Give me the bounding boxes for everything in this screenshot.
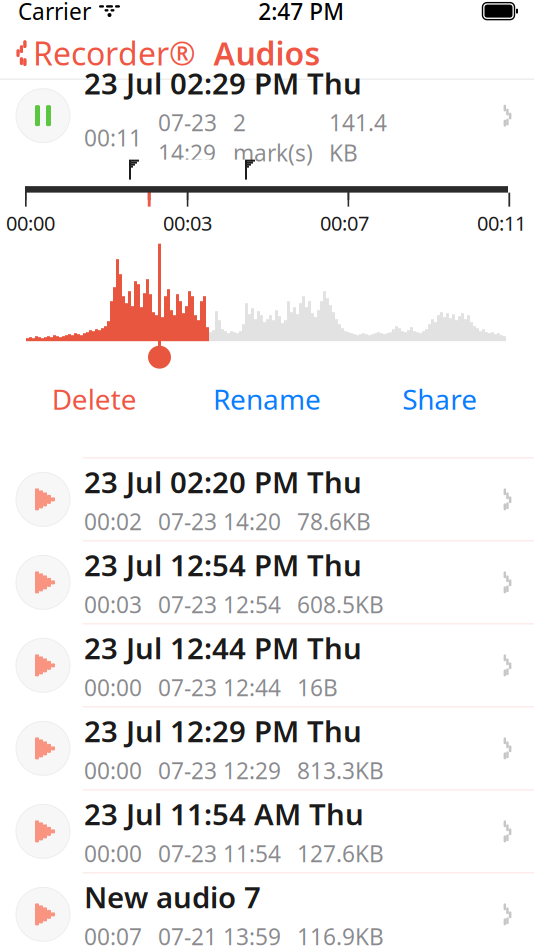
button[interactable]: Rename	[181, 370, 353, 427]
button[interactable]: Recorder®	[0, 24, 196, 82]
staticText: Delete	[52, 380, 137, 417]
staticText: 23 Jul 12:29 PM Thu	[84, 711, 362, 750]
staticText: 23 Jul 02:29 PM Thu	[84, 64, 362, 103]
staticText: 127.6KB	[297, 838, 384, 868]
staticText: 07-23 12:44	[158, 672, 281, 702]
staticText: 07-23 14:29	[158, 107, 217, 168]
staticText: 07-23 12:29	[158, 755, 281, 785]
staticText: 00:00	[84, 755, 142, 785]
staticText: New audio 7	[84, 877, 261, 916]
staticText: 116.9KB	[297, 921, 384, 950]
staticText: 00:02	[84, 506, 142, 536]
staticText: 07-23 12:54	[158, 589, 281, 619]
staticText: 23 Jul 12:44 PM Thu	[84, 628, 362, 667]
button[interactable]: 23 Jul 11:54 AM Thu	[0, 790, 534, 872]
staticText: Share	[402, 380, 477, 417]
staticText: 2:47 PM	[258, 0, 344, 26]
staticText: 2 mark(s)	[233, 107, 313, 168]
staticText: 78.6KB	[297, 506, 371, 536]
staticText: Rename	[213, 380, 321, 417]
staticText: 00:03	[84, 589, 142, 619]
staticText: 23 Jul 02:20 PM Thu	[84, 462, 362, 501]
staticText: Audios	[213, 32, 320, 74]
staticText: Recorder®	[33, 32, 196, 74]
button[interactable]: 23 Jul 02:20 PM Thu	[0, 458, 534, 540]
staticText: 00:11	[477, 210, 526, 236]
staticText: 00:00	[84, 672, 142, 702]
staticText: 00:00	[84, 838, 142, 868]
button[interactable]: 23 Jul 02:29 PM Thu	[0, 80, 534, 152]
staticText: 00:07	[320, 210, 369, 236]
staticText: Carrier	[18, 0, 91, 26]
staticText: 16B	[297, 672, 338, 702]
staticText: 23 Jul 12:54 PM Thu	[84, 545, 362, 584]
staticText: 813.3KB	[297, 755, 384, 785]
staticText: 07-21 13:59	[158, 921, 281, 950]
button[interactable]: Share	[353, 370, 526, 427]
staticText: 00:00	[6, 210, 55, 236]
staticText: 00:11	[84, 123, 142, 153]
button[interactable]: Delete	[8, 370, 181, 427]
staticText: 00:03	[163, 210, 212, 236]
staticText: 23 Jul 11:54 AM Thu	[84, 794, 364, 833]
staticText: 00:07	[84, 921, 142, 950]
staticText: 07-23 14:20	[158, 506, 281, 536]
button[interactable]: 23 Jul 12:54 PM Thu	[0, 541, 534, 623]
button[interactable]: 23 Jul 12:44 PM Thu	[0, 624, 534, 706]
button[interactable]: 23 Jul 12:29 PM Thu	[0, 707, 534, 789]
staticText: 141.4KB	[329, 107, 387, 168]
button[interactable]: New audio 7	[0, 873, 534, 950]
staticText: 07-23 11:54	[158, 838, 281, 868]
staticText: 608.5KB	[297, 589, 384, 619]
